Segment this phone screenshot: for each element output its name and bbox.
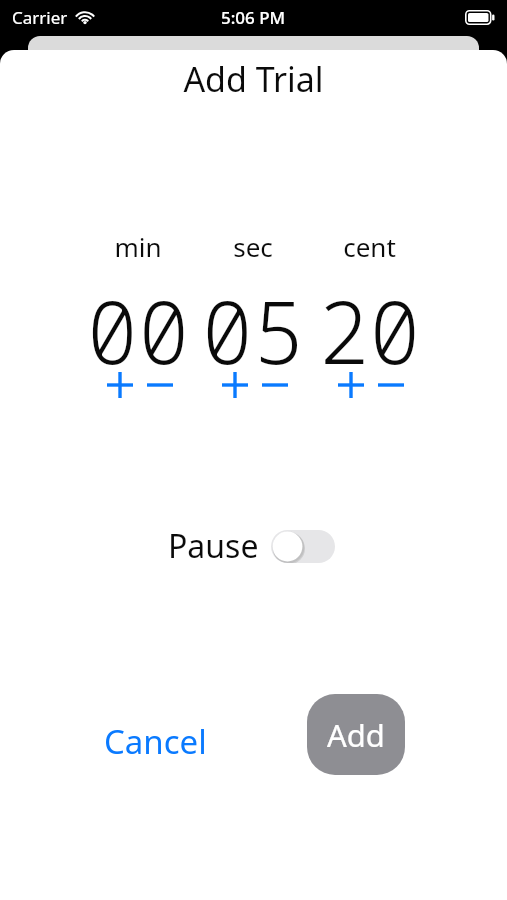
staticText: 00: [86, 272, 190, 366]
staticText: Add Trial: [183, 56, 324, 100]
staticText: cent: [343, 229, 396, 264]
staticText: 05: [201, 272, 305, 366]
button[interactable]: Add: [307, 694, 405, 775]
staticText: Pause: [168, 524, 259, 568]
staticText: 5:06 PM: [221, 6, 286, 29]
staticText: Cancel: [104, 719, 207, 764]
staticText: Add: [327, 714, 385, 756]
button[interactable]: Increase minutes: [105, 370, 135, 400]
button[interactable]: Decrease seconds: [260, 370, 290, 400]
button[interactable]: Pause: [168, 522, 335, 570]
staticText: Carrier: [12, 6, 68, 29]
button[interactable]: Decrease minutes: [145, 370, 175, 400]
button[interactable]: Decrease centiseconds: [376, 370, 406, 400]
staticText: 20: [317, 272, 421, 366]
button[interactable]: Increase centiseconds: [336, 370, 366, 400]
staticText: min: [114, 229, 162, 264]
button[interactable]: Increase seconds: [220, 370, 250, 400]
button[interactable]: Cancel: [95, 714, 215, 768]
staticText: sec: [233, 229, 273, 264]
